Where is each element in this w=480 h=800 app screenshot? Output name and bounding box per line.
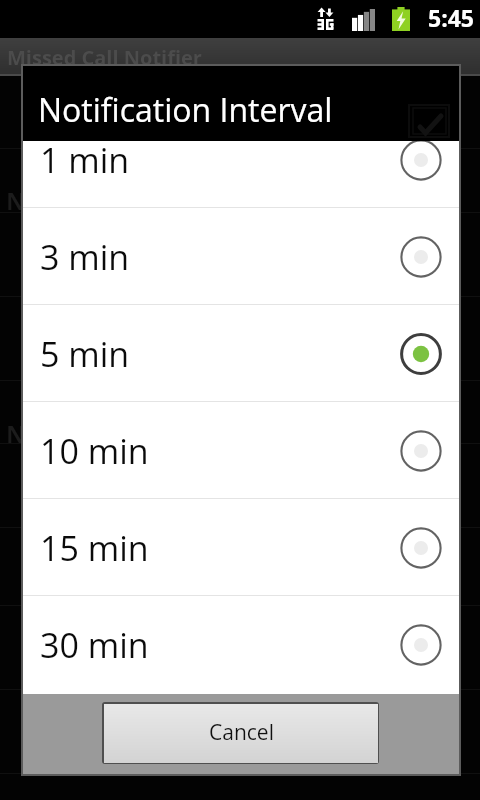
staticText: Missed Call Notifier [7, 44, 202, 71]
button[interactable]: 30 min [21, 596, 461, 693]
staticText: 3 min [40, 234, 130, 280]
other: Select all [408, 104, 450, 138]
staticText: 15 min [40, 525, 149, 571]
staticText: Notify on missed call [6, 184, 256, 217]
staticText: 5:45 [428, 2, 475, 33]
staticText: Notify on missed call [6, 417, 256, 450]
button[interactable]: 5 min [21, 305, 461, 402]
button[interactable]: 3 min [21, 208, 461, 305]
staticText: 1 min [40, 141, 130, 183]
button[interactable]: Cancel [104, 704, 378, 763]
staticText: 10 min [40, 428, 149, 474]
button[interactable]: 10 min [21, 402, 461, 499]
button[interactable]: 1 min [21, 141, 461, 208]
staticText: Notification Interval [38, 88, 333, 132]
button[interactable]: 15 min [21, 499, 461, 596]
staticText: 5 min [40, 331, 130, 377]
staticText: Cancel [209, 718, 274, 747]
staticText: 30 min [40, 622, 149, 668]
